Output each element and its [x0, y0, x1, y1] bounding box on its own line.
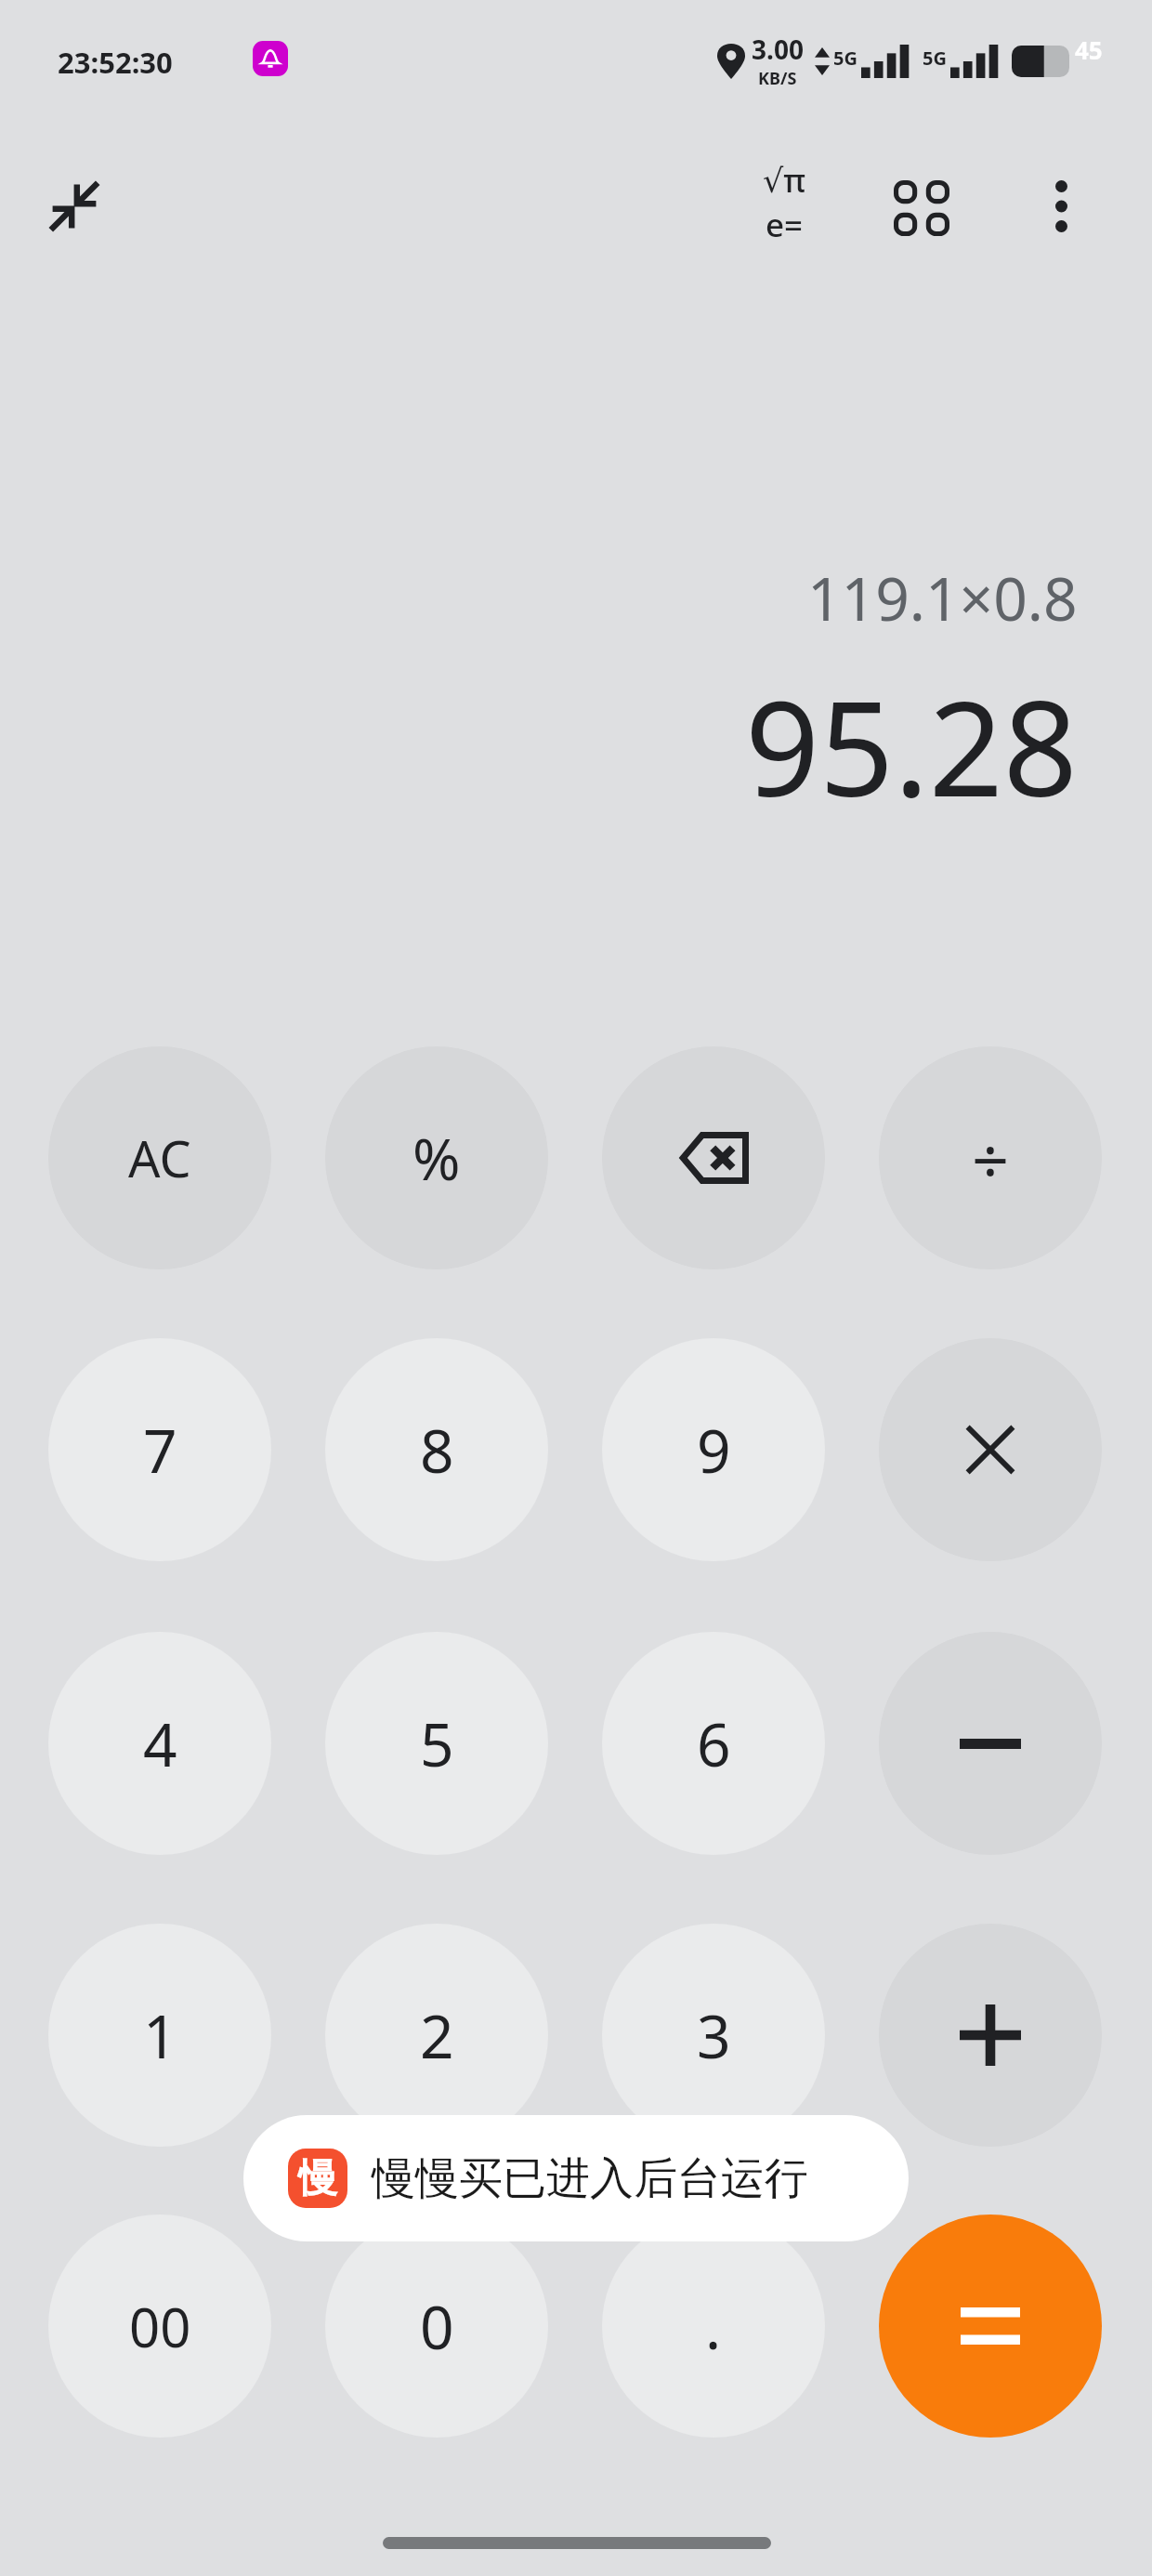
button[interactable]: ÷ — [879, 1046, 1102, 1269]
button[interactable]: Scientific mode — [740, 158, 829, 247]
staticText: 3 — [697, 1995, 731, 2076]
staticText: 8 — [420, 1410, 454, 1491]
button[interactable]: Collapse — [33, 165, 115, 247]
staticText: √π — [763, 158, 806, 203]
staticText: 6 — [697, 1703, 731, 1784]
button[interactable]: Notification — [253, 41, 288, 76]
button[interactable]: 1 — [48, 1924, 271, 2147]
staticText: 95.28 — [745, 657, 1078, 835]
staticText: 5G — [923, 46, 947, 71]
button[interactable]: 2 — [325, 1924, 548, 2147]
button[interactable]: 0 — [325, 2215, 548, 2438]
staticText: 1 — [143, 1995, 177, 2076]
button[interactable]: % — [325, 1046, 548, 1269]
button[interactable]: 9 — [602, 1338, 825, 1561]
staticText: 2 — [420, 1995, 454, 2076]
staticText: 119.1×0.8 — [807, 558, 1078, 638]
button[interactable]: Equals — [879, 2215, 1102, 2438]
staticText: ÷ — [972, 1114, 1010, 1203]
staticText: KB/S — [758, 67, 797, 90]
staticText: 0 — [420, 2286, 454, 2367]
staticText: 慢慢买已进入后台运行 — [372, 2151, 808, 2206]
staticText: 慢 — [298, 2154, 337, 2203]
button[interactable]: More options — [1020, 165, 1102, 247]
staticText: 9 — [697, 1410, 731, 1491]
button[interactable]: 5 — [325, 1632, 548, 1855]
button[interactable]: 3 — [602, 1924, 825, 2147]
button[interactable]: 00 — [48, 2215, 271, 2438]
button[interactable]: 7 — [48, 1338, 271, 1561]
staticText: AC — [128, 1124, 191, 1192]
button[interactable]: Multiply — [879, 1338, 1102, 1561]
staticText: 7 — [143, 1410, 177, 1491]
staticText: 3.00 — [752, 32, 804, 67]
button[interactable]: 4 — [48, 1632, 271, 1855]
staticText: 00 — [129, 2290, 191, 2363]
staticText: 5 — [420, 1703, 454, 1784]
button[interactable]: Add — [879, 1924, 1102, 2147]
staticText: e= — [766, 203, 804, 247]
staticText: 5G — [833, 46, 857, 71]
staticText: 45 — [1075, 33, 1103, 66]
staticText: 4 — [143, 1703, 177, 1784]
button[interactable]: 8 — [325, 1338, 548, 1561]
staticText: % — [412, 1119, 461, 1197]
button[interactable]: AC — [48, 1046, 271, 1269]
button[interactable]: Subtract — [879, 1632, 1102, 1855]
staticText: . — [705, 2286, 722, 2367]
button[interactable]: . — [602, 2215, 825, 2438]
button[interactable]: 6 — [602, 1632, 825, 1855]
button[interactable]: 慢 — [243, 2115, 909, 2241]
button[interactable]: Keypad layout — [879, 165, 964, 251]
button[interactable]: Backspace — [602, 1046, 825, 1269]
staticText: 23:52:30 — [58, 43, 173, 82]
